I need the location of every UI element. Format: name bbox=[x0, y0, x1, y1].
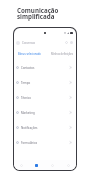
button[interactable]: Marketing bbox=[14, 105, 76, 120]
staticText: Bónus selecionado bbox=[18, 52, 41, 56]
button[interactable]: Tempo bbox=[14, 75, 76, 90]
button[interactable]: Nav item 0 bbox=[14, 160, 29, 170]
button[interactable]: Notificações bbox=[14, 120, 76, 135]
button[interactable]: Minhas definições bbox=[49, 48, 76, 60]
button[interactable]: Técnico bbox=[14, 90, 76, 105]
staticText: Marketing bbox=[21, 111, 35, 115]
staticText: Comunicação simplificada bbox=[17, 6, 59, 21]
staticText: Tempo bbox=[21, 81, 31, 85]
staticText: Notificações bbox=[21, 126, 38, 130]
button[interactable]: More options bbox=[70, 41, 73, 44]
button[interactable]: Contactos bbox=[14, 60, 76, 75]
staticText: Conversas bbox=[22, 41, 36, 45]
staticText: Minhas definições bbox=[51, 52, 74, 56]
button[interactable]: Nav item 3 bbox=[60, 160, 76, 170]
staticText: Técnico bbox=[21, 96, 31, 100]
button[interactable]: Search bbox=[65, 41, 68, 44]
button[interactable]: Bónus selecionado bbox=[16, 48, 43, 60]
button[interactable]: Formulários bbox=[14, 135, 76, 150]
staticText: Contactos bbox=[21, 66, 35, 70]
staticText: Formulários bbox=[21, 141, 38, 145]
button[interactable]: Nav item 1 bbox=[29, 160, 44, 170]
button[interactable]: Profile bbox=[16, 41, 20, 45]
